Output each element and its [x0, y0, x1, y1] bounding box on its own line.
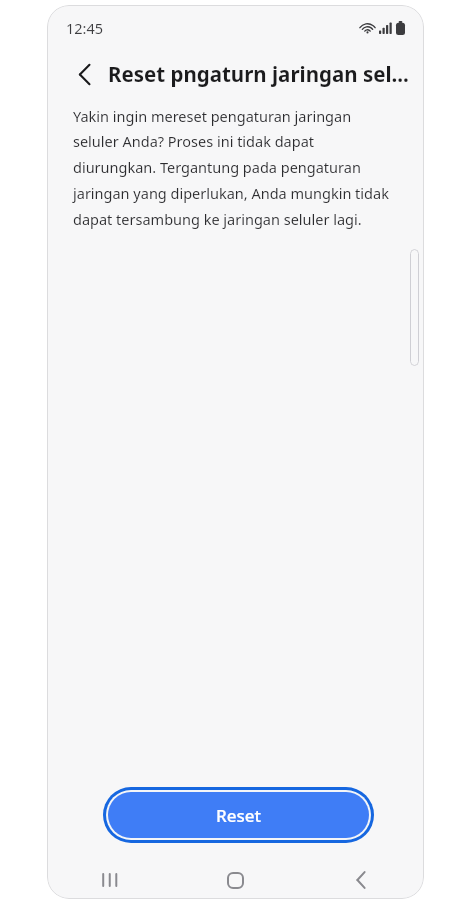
button[interactable]: Back: [298, 861, 424, 899]
button[interactable]: Home: [172, 861, 298, 899]
staticText: Yakin ingin mereset pengaturan jaringan …: [73, 106, 398, 230]
staticText: Reset: [216, 804, 262, 827]
staticText: Reset pngaturn jaringan sel...: [108, 60, 409, 88]
staticText: 12:45: [66, 18, 104, 38]
button[interactable]: Back: [69, 58, 101, 90]
button[interactable]: Reset: [103, 787, 374, 843]
button[interactable]: Recents: [47, 861, 172, 899]
